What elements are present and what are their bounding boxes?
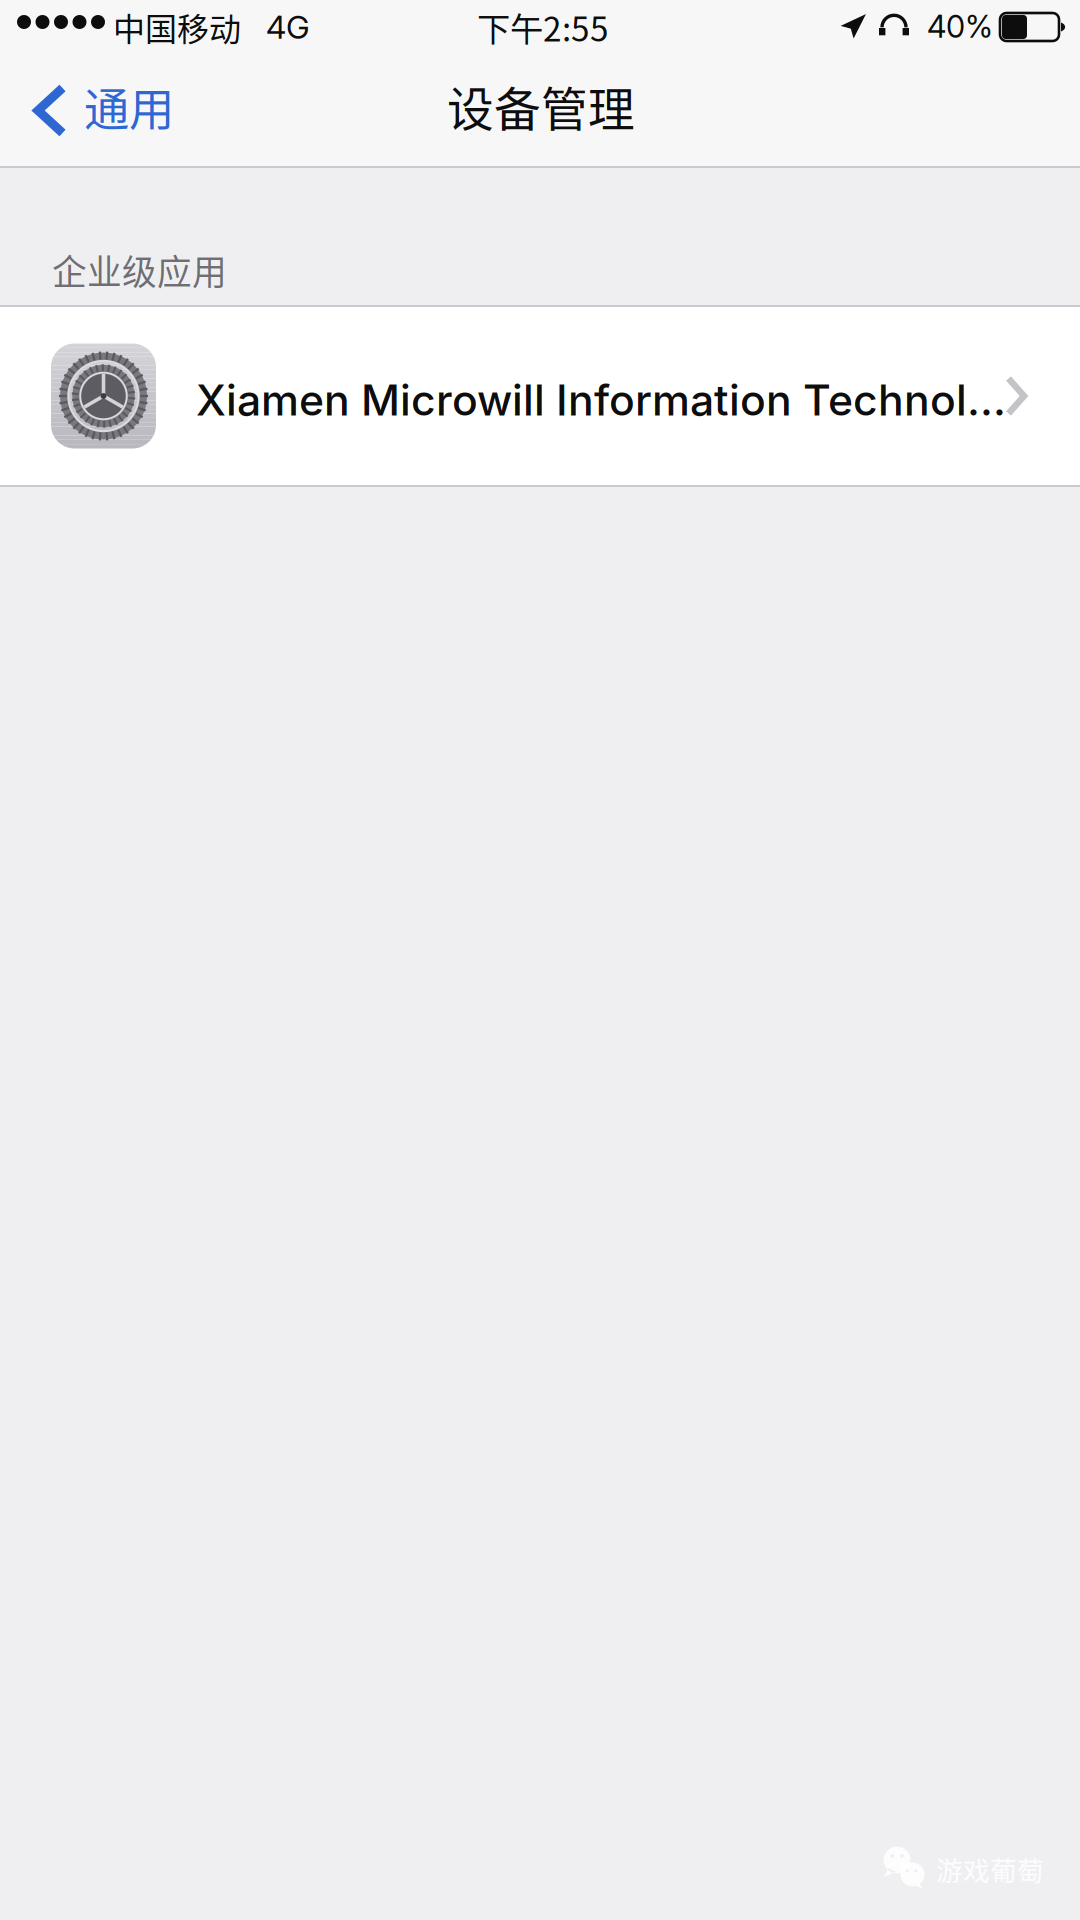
button[interactable]: Xiamen Microwill Information Technol... — [0, 305, 1080, 487]
staticText: 中国移动 — [113, 4, 241, 50]
staticText: Xiamen Microwill Information Technol... — [196, 374, 1006, 426]
staticText: 通用 — [84, 74, 174, 139]
staticText: 40% — [927, 8, 993, 45]
staticText: 游戏葡萄 — [936, 1850, 1044, 1888]
staticText: 4G — [266, 8, 310, 46]
staticText: 设备管理 — [447, 72, 635, 140]
button[interactable]: 通用 — [0, 54, 196, 168]
staticText: 企业级应用 — [52, 245, 227, 295]
staticText: 下午2:55 — [477, 3, 609, 51]
